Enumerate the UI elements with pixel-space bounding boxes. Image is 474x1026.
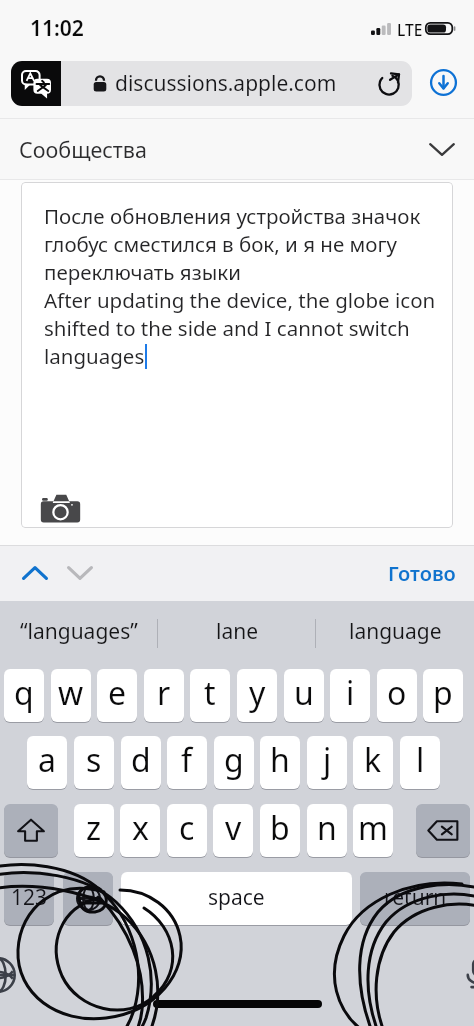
staticText: t (204, 671, 216, 715)
button[interactable]: q (4, 669, 44, 722)
staticText: o (387, 671, 407, 715)
button[interactable]: space (121, 872, 352, 925)
button[interactable]: u (284, 669, 324, 722)
staticText: s (86, 738, 102, 782)
staticText: m (358, 806, 388, 850)
staticText: n (317, 806, 337, 850)
button[interactable]: Switch keyboard (63, 872, 113, 925)
button[interactable]: m (353, 804, 393, 857)
staticText: “languages” (20, 617, 138, 646)
button[interactable]: s (74, 736, 114, 789)
button[interactable]: t (190, 669, 230, 722)
staticText: language (349, 617, 442, 646)
staticText: d (131, 738, 151, 782)
staticText: return (384, 883, 447, 912)
staticText: z (86, 806, 102, 850)
staticText: discussions.apple.com (115, 69, 337, 98)
staticText: space (208, 883, 265, 912)
button[interactable]: j (307, 736, 347, 789)
staticText: q (14, 671, 34, 715)
button[interactable]: r (144, 669, 184, 722)
staticText: h (270, 738, 290, 782)
button[interactable]: b (260, 804, 300, 857)
button[interactable]: “languages” (0, 601, 158, 661)
staticText: f (181, 738, 193, 782)
button[interactable]: v (213, 804, 253, 857)
button[interactable]: 123 (4, 872, 54, 925)
staticText: languages (44, 342, 145, 370)
button[interactable]: k (353, 736, 393, 789)
button[interactable]: Готово (370, 545, 474, 601)
button[interactable]: После обновления устройства значок (21, 182, 453, 528)
staticText: l (416, 738, 425, 782)
button[interactable]: Сообщества (0, 119, 474, 180)
button[interactable]: a (27, 736, 67, 789)
staticText: After updating the device, the globe ico… (44, 286, 436, 314)
staticText: 123 (11, 883, 48, 912)
staticText: g (224, 738, 244, 782)
button[interactable]: e (97, 669, 137, 722)
button[interactable]: i (330, 669, 370, 722)
staticText: p (433, 671, 453, 715)
staticText: u (294, 671, 314, 715)
staticText: LTE (397, 19, 423, 40)
button[interactable]: Backspace (416, 804, 470, 857)
button[interactable]: Reload page (368, 61, 412, 106)
staticText: a (38, 738, 56, 782)
button[interactable]: return (360, 872, 470, 925)
button[interactable]: Dictation (455, 950, 474, 996)
staticText: x (132, 806, 149, 850)
staticText: i (346, 671, 355, 715)
button[interactable]: n (307, 804, 347, 857)
staticText: k (364, 738, 382, 782)
staticText: y (249, 671, 266, 715)
button[interactable]: g (214, 736, 254, 789)
button[interactable]: discussions.apple.com (61, 61, 412, 106)
staticText: lane (216, 617, 259, 646)
button[interactable]: c (167, 804, 207, 857)
staticText: shifted to the side and I cannot switch (44, 314, 410, 342)
staticText: e (108, 671, 127, 715)
button[interactable]: o (377, 669, 417, 722)
button[interactable]: l (400, 736, 440, 789)
button[interactable]: Translate page (11, 61, 61, 106)
button[interactable]: d (121, 736, 161, 789)
button[interactable]: p (423, 669, 463, 722)
staticText: w (58, 671, 84, 715)
button[interactable]: x (120, 804, 160, 857)
button[interactable]: Shift (4, 804, 58, 857)
button[interactable]: Next field (57, 545, 103, 601)
staticText: глобус сместился в бок, и я не могу (44, 230, 397, 258)
staticText: Сообщества (19, 135, 147, 164)
button[interactable]: w (51, 669, 91, 722)
button[interactable]: Downloads (424, 63, 463, 102)
staticText: 11:02 (30, 14, 84, 43)
staticText: переключать языки (44, 258, 241, 286)
staticText: После обновления устройства значок (44, 202, 421, 230)
staticText: b (270, 806, 290, 850)
button[interactable]: Previous field (12, 545, 58, 601)
staticText: c (179, 806, 195, 850)
staticText: v (225, 806, 242, 850)
button[interactable]: Insert photo (40, 493, 81, 524)
staticText: r (157, 671, 171, 715)
button[interactable]: Language (0, 952, 21, 998)
button[interactable]: h (260, 736, 300, 789)
button[interactable]: z (74, 804, 114, 857)
staticText: Готово (388, 560, 456, 587)
button[interactable]: lane (159, 601, 316, 661)
button[interactable]: y (237, 669, 277, 722)
button[interactable]: language (317, 601, 474, 661)
staticText: j (323, 738, 332, 782)
button[interactable]: f (167, 736, 207, 789)
